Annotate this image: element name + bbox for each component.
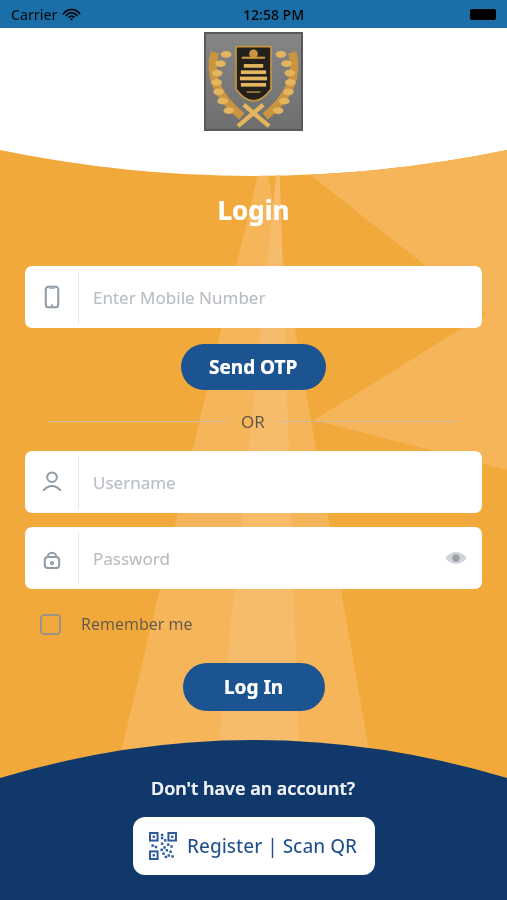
button[interactable]: Remember me [40, 607, 193, 641]
staticText: Send OTP [209, 354, 298, 380]
staticText: 12:58 PM [243, 5, 305, 24]
button[interactable]: Register | Scan QR [133, 817, 375, 875]
button[interactable]: Enter Mobile Number [25, 266, 482, 328]
staticText: Remember me [81, 613, 193, 635]
staticText: Register | Scan QR [187, 833, 358, 859]
button[interactable]: Log In [183, 663, 325, 711]
staticText: Enter Mobile Number [93, 286, 266, 309]
staticText: Don't have an account? [151, 776, 356, 801]
staticText: Login [0, 192, 507, 227]
button[interactable]: Username [25, 451, 482, 513]
button[interactable]: Send OTP [181, 344, 326, 390]
staticText: Password [93, 547, 170, 570]
button[interactable]: Show password [434, 536, 478, 580]
staticText: OR [241, 410, 265, 433]
staticText: Log In [224, 674, 284, 700]
staticText: Carrier [11, 5, 58, 24]
button[interactable]: Password [25, 527, 482, 589]
staticText: Username [93, 471, 176, 494]
